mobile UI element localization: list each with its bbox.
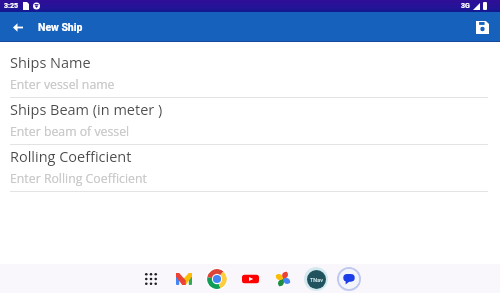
staticText: Enter vessel name [10, 76, 115, 93]
staticText: 3G [461, 2, 470, 10]
button[interactable]: Messages [336, 266, 362, 292]
button[interactable]: TNav [303, 266, 329, 292]
button[interactable]: Gmail [171, 266, 197, 292]
staticText: Rolling Coefficient [10, 147, 132, 167]
button[interactable]: Save [472, 17, 493, 38]
staticText: Ships Beam (in meter ) [10, 100, 163, 120]
staticText: Ships Name [10, 53, 91, 73]
staticText: TNav [310, 277, 323, 283]
button[interactable]: All apps [138, 266, 164, 292]
button[interactable]: Chrome [204, 266, 230, 292]
button[interactable]: Photos [270, 266, 296, 292]
staticText: 3:25 [4, 2, 19, 10]
staticText: Enter beam of vessel [10, 123, 130, 140]
staticText: Enter Rolling Coefficient [10, 170, 147, 187]
staticText: New Ship [38, 21, 83, 33]
button[interactable]: Back [7, 17, 28, 38]
button[interactable]: YouTube [237, 266, 263, 292]
